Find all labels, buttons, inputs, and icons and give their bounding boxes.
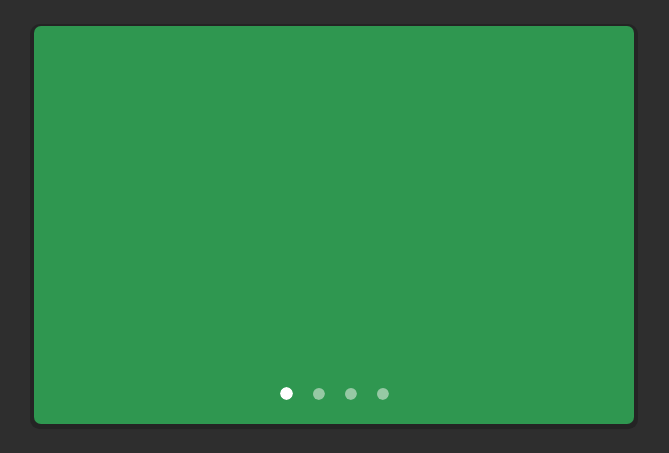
button[interactable]: Go to page 1 [280, 387, 293, 400]
button[interactable]: Go to page 4 [376, 387, 389, 400]
button[interactable]: Go to page 3 [344, 387, 357, 400]
button[interactable]: Go to page 1 [34, 26, 634, 424]
button[interactable]: Go to page 2 [312, 387, 325, 400]
